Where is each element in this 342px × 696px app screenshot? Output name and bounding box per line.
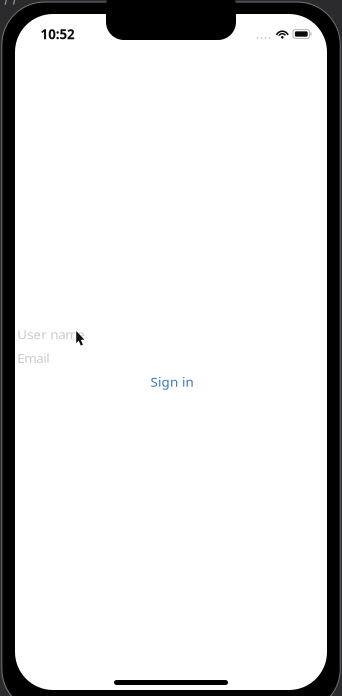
button[interactable]: Sign in: [17, 370, 327, 393]
staticText: User name: [17, 325, 85, 343]
staticText: Sign in: [151, 373, 194, 390]
button[interactable]: User name: [17, 322, 321, 346]
button[interactable]: Email: [17, 346, 321, 370]
staticText: 10:52: [40, 25, 75, 43]
staticText: Email: [17, 349, 49, 367]
